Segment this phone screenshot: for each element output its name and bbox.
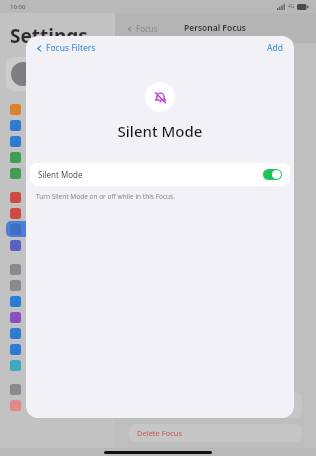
button[interactable]: Silent Mode	[30, 163, 290, 186]
button[interactable]: Siri & Search	[6, 357, 109, 373]
button[interactable]: Notifications	[6, 189, 109, 205]
staticText: Silent Mode	[26, 121, 294, 141]
button[interactable]: Wi-Fi	[6, 117, 109, 133]
button[interactable]: Delete Focus	[129, 424, 302, 442]
staticText: 4G	[288, 3, 295, 10]
button[interactable]: Add	[264, 39, 286, 57]
button[interactable]: Focus	[6, 221, 109, 237]
staticText: Notifications	[26, 193, 65, 202]
button[interactable]: Silent Mode toggle, on	[263, 169, 282, 180]
button[interactable]	[6, 57, 109, 91]
staticText: Focus Filters	[46, 42, 96, 54]
button[interactable]: Bluetooth	[6, 133, 109, 149]
button[interactable]: Accessibility	[6, 325, 109, 341]
staticText: Focus	[136, 23, 158, 34]
button[interactable]: Sounds	[6, 205, 109, 221]
button[interactable]: Display	[6, 293, 109, 309]
button[interactable]: Personal Hot.	[6, 165, 109, 181]
button[interactable]: General	[6, 261, 109, 277]
button[interactable]: Mobile Data	[6, 149, 109, 165]
button[interactable]: Home Screen	[6, 309, 109, 325]
staticText: Delete Focus	[137, 428, 183, 438]
staticText: Add	[267, 42, 283, 54]
button[interactable]: Screen Time	[6, 237, 109, 253]
button[interactable]: Control Centre	[6, 277, 109, 293]
staticText: 10:00	[10, 3, 26, 11]
staticText: Silent Mode	[38, 169, 83, 180]
button[interactable]: Apple Pencil	[6, 381, 109, 397]
staticText: Personal Hot.	[26, 169, 68, 178]
button[interactable]: Wallpaper	[6, 341, 109, 357]
button[interactable]: Focus Filters	[34, 39, 98, 57]
button[interactable]: Airplane Mode	[6, 101, 109, 117]
staticText: Settings	[10, 23, 88, 49]
button[interactable]: Touch ID	[6, 397, 109, 413]
staticText: Turn Silent Mode on or off while in this…	[36, 192, 175, 201]
staticText: Personal Focus	[184, 22, 247, 34]
button[interactable]: Focus	[127, 23, 158, 34]
